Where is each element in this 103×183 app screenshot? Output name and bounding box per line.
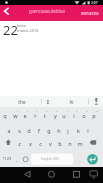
staticText: t	[44, 112, 46, 119]
staticText: 4	[36, 109, 38, 112]
staticText: hi	[69, 99, 74, 106]
staticText: 8	[76, 109, 78, 112]
staticText: r	[34, 112, 37, 119]
staticText: k	[77, 127, 80, 134]
staticText: f	[38, 127, 40, 134]
staticText: .	[79, 156, 81, 163]
staticText: a	[7, 127, 11, 134]
staticText: 1	[7, 109, 9, 112]
button[interactable]	[35, 167, 69, 183]
staticText: v	[49, 140, 52, 147]
staticText: 9	[86, 109, 88, 112]
staticText: y	[54, 112, 57, 119]
staticText: kvira	[17, 23, 26, 28]
staticText: l	[87, 127, 89, 134]
staticText: 7	[66, 109, 68, 112]
button[interactable]: q	[0, 107, 103, 167]
staticText: 6	[56, 109, 58, 112]
staticText: c	[39, 140, 42, 147]
staticText: p	[92, 112, 96, 119]
staticText: ?123	[2, 156, 12, 162]
staticText: the	[18, 99, 26, 106]
staticText: 0	[96, 109, 98, 112]
staticText: b	[58, 140, 62, 147]
staticText: d	[27, 127, 31, 134]
button[interactable]: senaxva	[78, 7, 102, 19]
staticText: ,	[16, 157, 18, 164]
staticText: w	[13, 112, 18, 119]
button[interactable]	[0, 5, 16, 21]
staticText: 3	[26, 109, 28, 112]
staticText: 5	[46, 109, 48, 112]
button[interactable]: the	[0, 96, 103, 107]
staticText: g	[47, 127, 51, 134]
staticText: h	[57, 127, 61, 134]
button[interactable]	[69, 167, 103, 183]
staticText: j	[67, 127, 69, 134]
staticText: o	[82, 112, 86, 119]
staticText: I	[47, 99, 49, 106]
staticText: z	[18, 140, 21, 147]
staticText: 2	[17, 109, 19, 112]
staticText: n	[68, 140, 72, 147]
staticText: q	[3, 112, 7, 119]
staticText: s	[18, 127, 21, 134]
staticText: maisis 2016	[17, 28, 39, 33]
staticText: e	[23, 112, 27, 119]
staticText: English (US)	[41, 157, 59, 161]
staticText: 2:07	[91, 0, 98, 4]
staticText: 22	[3, 21, 18, 39]
staticText: x	[29, 140, 32, 147]
staticText: senaxva	[81, 10, 99, 16]
staticText: m	[77, 140, 83, 147]
staticText: gamosaxulebisa	[29, 8, 65, 14]
staticText: u	[62, 112, 66, 119]
staticText: i	[73, 112, 75, 119]
button[interactable]	[0, 167, 35, 183]
